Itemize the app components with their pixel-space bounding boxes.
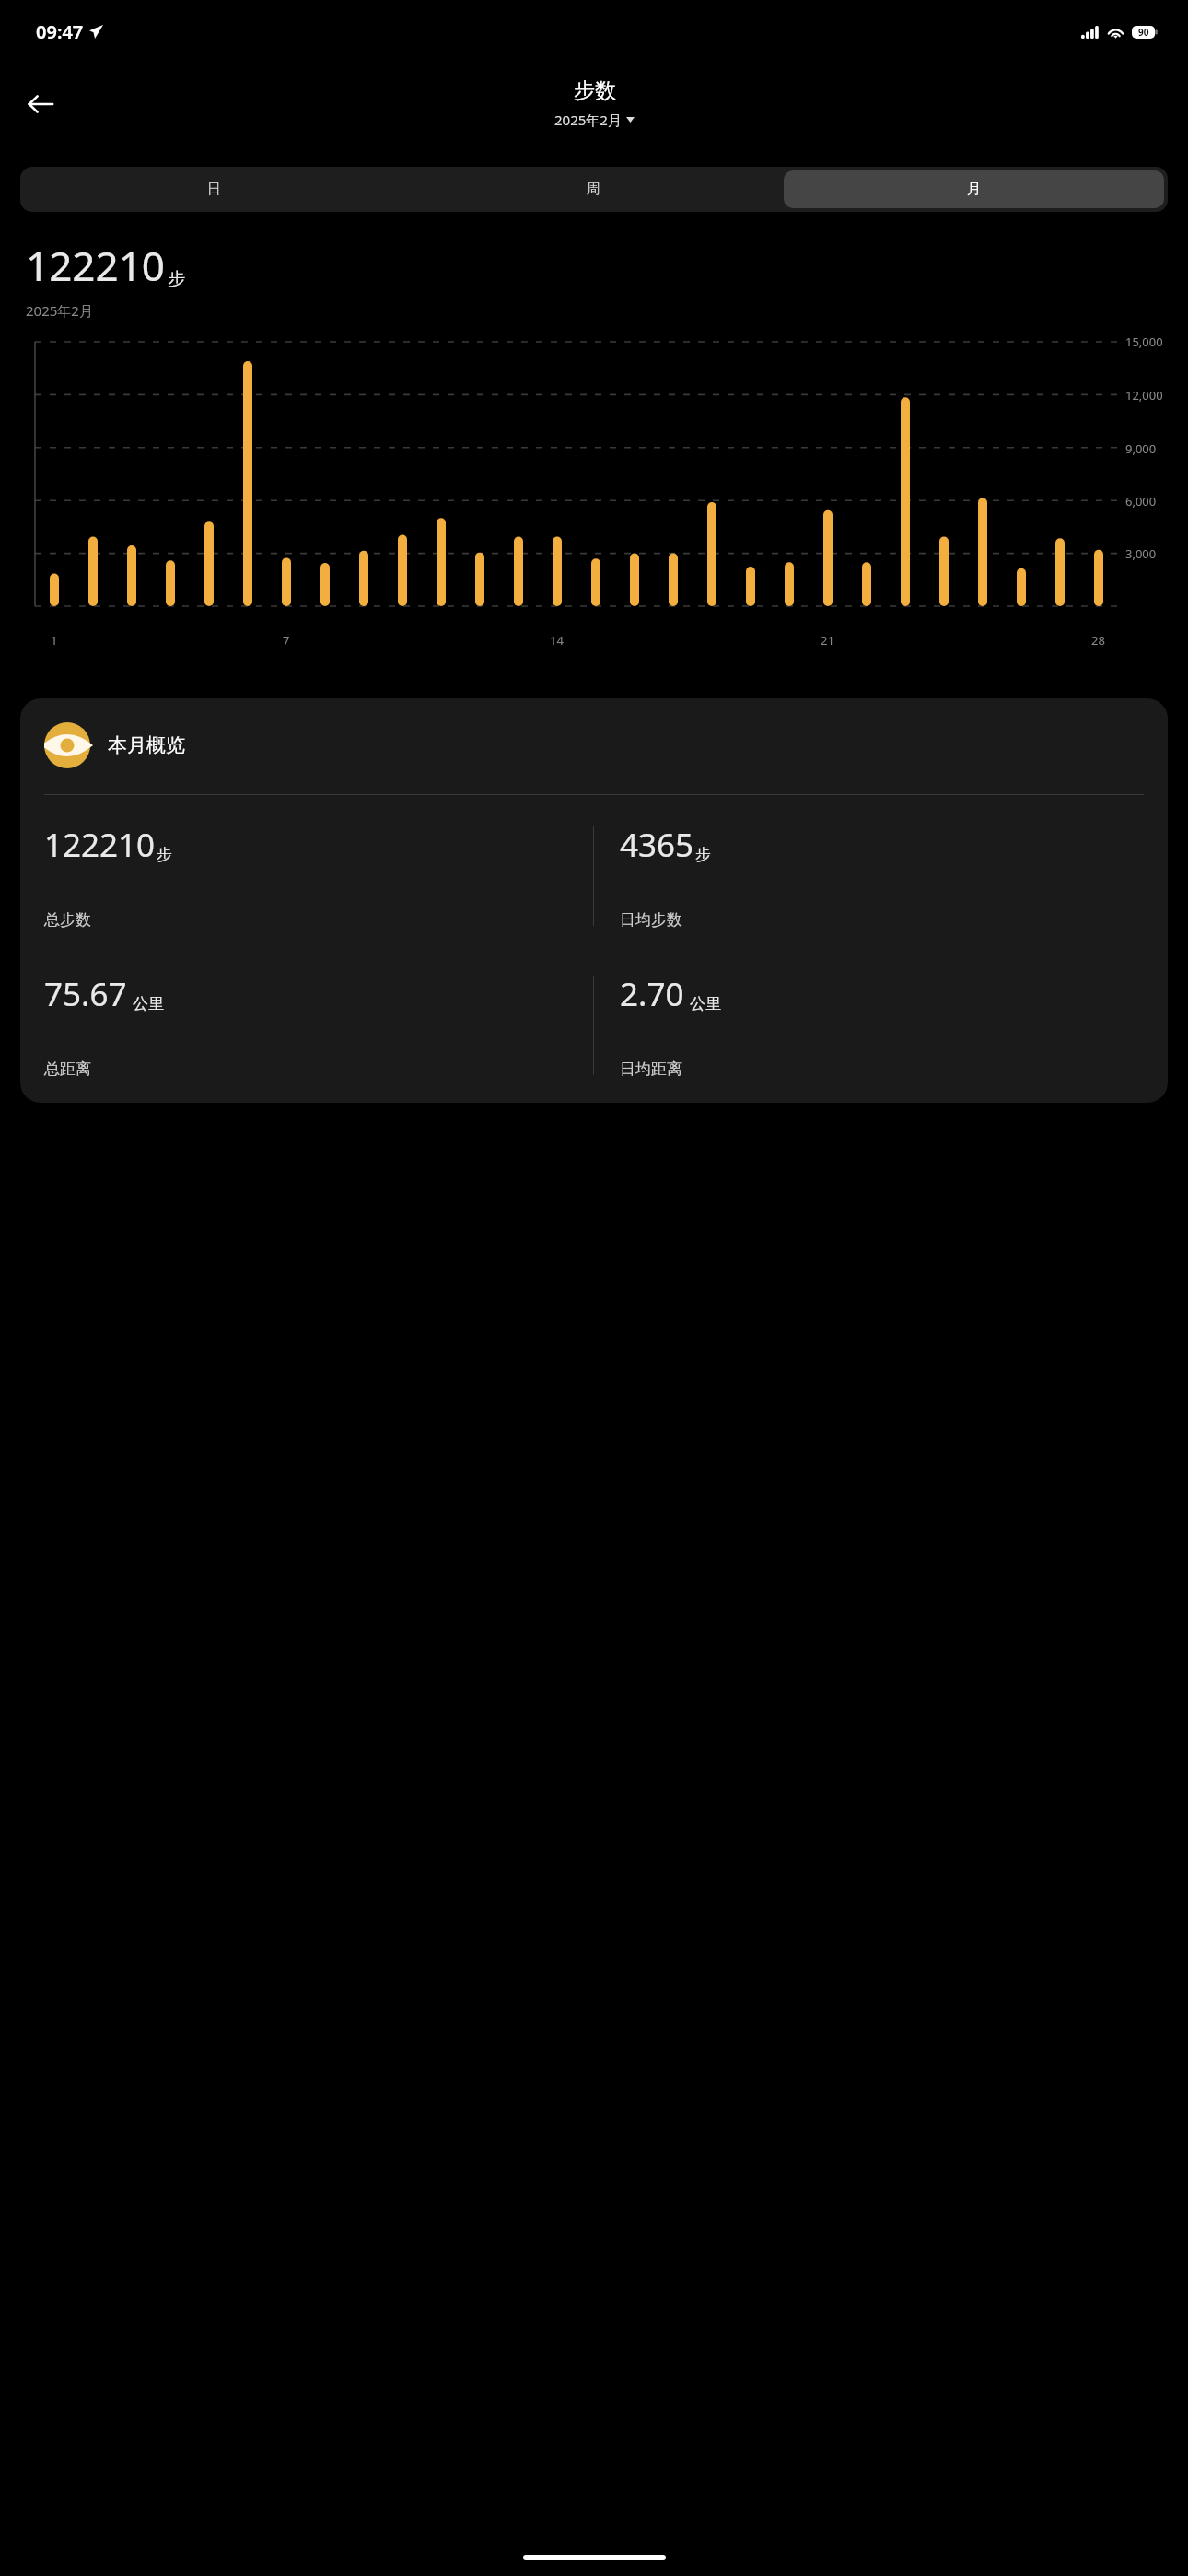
staticText: 月	[967, 181, 981, 198]
staticText: 步	[157, 845, 172, 864]
staticText: 步	[168, 268, 185, 290]
staticText: 2025年2月	[26, 301, 93, 320]
staticText: 14	[550, 632, 564, 649]
staticText: 90	[1138, 26, 1149, 39]
staticText: 2025年2月	[554, 111, 622, 129]
staticText: 总步数	[44, 910, 91, 930]
staticText: 公里	[133, 994, 164, 1013]
staticText: 周	[587, 181, 600, 198]
button[interactable]: Back	[13, 76, 68, 132]
staticText: 75.67	[44, 972, 127, 1016]
staticText: 2.70	[620, 972, 684, 1016]
staticText: 日均步数	[620, 910, 682, 930]
button[interactable]: 本月概览	[44, 722, 1144, 768]
staticText: 122210	[26, 238, 166, 293]
button[interactable]: 月	[784, 170, 1164, 208]
staticText: 122210	[44, 823, 156, 867]
staticText: 步数	[574, 77, 616, 104]
staticText: 步	[695, 845, 711, 864]
staticText: 日均距离	[620, 1060, 682, 1079]
staticText: 公里	[690, 994, 721, 1013]
staticText: 9,000	[1125, 440, 1157, 457]
staticText: 总距离	[44, 1060, 91, 1079]
staticText: 28	[1091, 632, 1105, 649]
staticText: 1	[51, 632, 58, 649]
button[interactable]: 周	[403, 170, 784, 208]
button[interactable]: 日	[24, 170, 403, 208]
staticText: 6,000	[1125, 493, 1157, 509]
staticText: 4365	[620, 823, 694, 867]
staticText: 15,000	[1125, 334, 1163, 350]
staticText: 21	[821, 632, 834, 649]
staticText: 09:47	[36, 19, 84, 44]
staticText: 12,000	[1125, 387, 1163, 404]
staticText: 本月概览	[108, 733, 185, 757]
staticText: 日	[207, 181, 221, 198]
staticText: 7	[283, 632, 290, 649]
staticText: 3,000	[1125, 545, 1157, 562]
button[interactable]: 2025年2月	[551, 109, 638, 131]
